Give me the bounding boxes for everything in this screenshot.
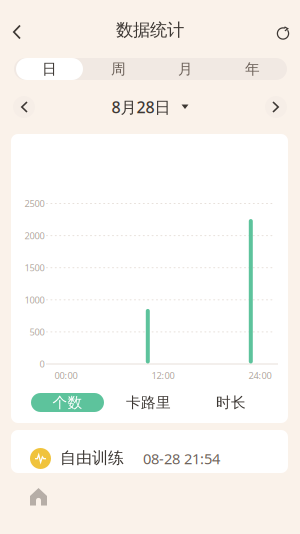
staticText: 数据统计: [116, 19, 184, 41]
staticText: 08-28 21:54: [143, 449, 220, 468]
staticText: 24:00: [248, 369, 271, 382]
button[interactable]: 月: [152, 58, 219, 80]
staticText: 2500: [24, 197, 44, 210]
staticText: 年: [245, 60, 260, 78]
staticText: 月: [178, 60, 193, 78]
staticText: 500: [29, 326, 44, 338]
button[interactable]: Home: [16, 480, 60, 514]
staticText: 周: [111, 60, 126, 78]
button[interactable]: 周: [85, 58, 152, 80]
staticText: 12:00: [151, 369, 174, 382]
staticText: 2000: [24, 229, 44, 242]
staticText: 1000: [24, 294, 44, 306]
button[interactable]: 卡路里: [120, 393, 176, 412]
staticText: 00:00: [54, 369, 77, 382]
staticText: 个数: [52, 393, 82, 411]
button[interactable]: Back: [0, 14, 33, 50]
button[interactable]: 8月28日: [90, 94, 210, 120]
button[interactable]: History: [266, 15, 300, 51]
button[interactable]: 日: [14, 58, 85, 80]
button[interactable]: 时长: [203, 393, 259, 412]
staticText: 8月28日: [111, 96, 170, 118]
button[interactable]: 个数: [31, 393, 104, 412]
staticText: 1500: [24, 261, 44, 274]
staticText: 自由训练: [60, 448, 124, 468]
staticText: 卡路里: [126, 393, 171, 411]
button[interactable]: Previous day: [9, 93, 39, 121]
staticText: 时长: [216, 393, 246, 411]
staticText: 0: [39, 358, 44, 370]
button[interactable]: 自由训练: [11, 430, 288, 473]
staticText: 日: [42, 60, 57, 78]
button[interactable]: 年: [219, 58, 286, 80]
button[interactable]: Next day: [261, 93, 291, 121]
